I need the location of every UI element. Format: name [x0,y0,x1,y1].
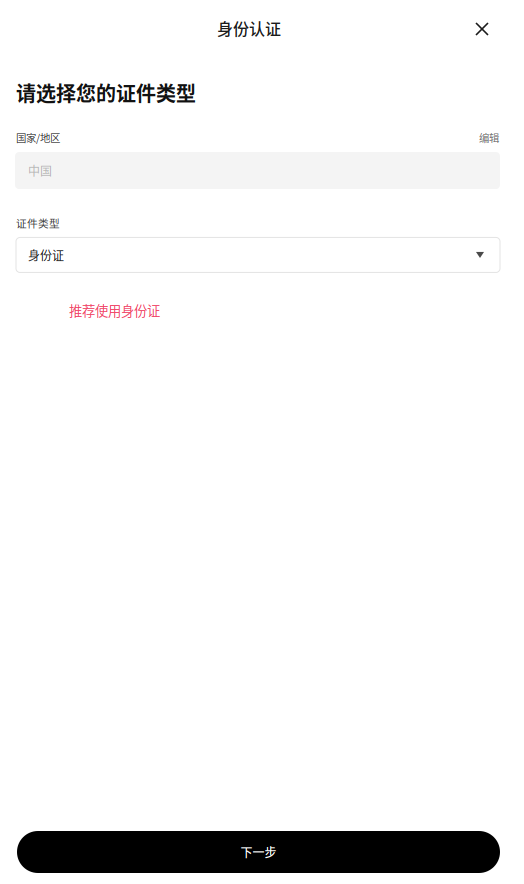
staticText: 请选择您的证件类型 [16,78,196,107]
staticText: 证件类型 [16,215,60,230]
button[interactable]: Close [462,9,502,49]
button[interactable]: 身份证 [16,237,500,272]
staticText: 中国 [28,162,52,179]
staticText: 身份认证 [217,16,281,40]
staticText: 推荐使用身份证 [69,300,160,320]
staticText: 编辑 [479,130,499,145]
button[interactable]: 下一步 [17,831,500,873]
staticText: 下一步 [240,843,276,861]
staticText: 国家/地区 [16,130,60,145]
staticText: 身份证 [28,246,64,264]
button[interactable]: 编辑 [479,130,499,145]
